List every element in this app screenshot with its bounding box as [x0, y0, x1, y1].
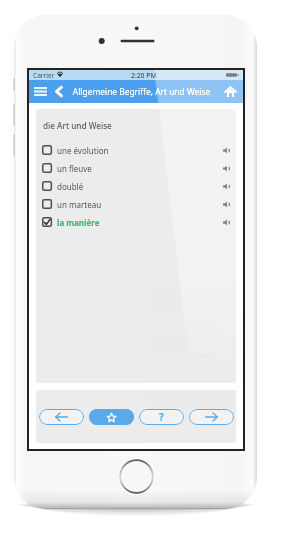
- button[interactable]: Play audio: [220, 214, 233, 230]
- button[interactable]: Play audio: [220, 178, 233, 194]
- button[interactable]: Home: [219, 80, 241, 103]
- staticText: un marteau: [57, 199, 102, 210]
- button[interactable]: la manière: [36, 213, 236, 231]
- button[interactable]: Play audio: [220, 160, 233, 176]
- button[interactable]: Back: [53, 80, 64, 103]
- button[interactable]: Home: [119, 459, 154, 494]
- staticText: ?: [159, 410, 164, 424]
- staticText: une évolution: [57, 145, 109, 156]
- staticText: un fleuve: [57, 163, 92, 174]
- staticText: doublé: [57, 181, 84, 192]
- button[interactable]: Help: [139, 409, 184, 425]
- button[interactable]: Next: [189, 409, 234, 425]
- button[interactable]: Favorite: [89, 409, 134, 425]
- staticText: die Art und Weise: [43, 120, 112, 131]
- staticText: la manière: [57, 217, 100, 228]
- button[interactable]: un fleuve: [36, 159, 236, 177]
- button[interactable]: Play audio: [220, 196, 233, 212]
- staticText: Carrier: [33, 71, 55, 80]
- button[interactable]: doublé: [36, 177, 236, 195]
- button[interactable]: un marteau: [36, 195, 236, 213]
- button[interactable]: Play audio: [220, 142, 233, 158]
- button[interactable]: une évolution: [36, 141, 236, 159]
- staticText: Allgemeine Begriffe, Art und Weise: [66, 86, 217, 97]
- staticText: 2:20 PM: [131, 71, 157, 80]
- button[interactable]: Previous: [39, 409, 84, 425]
- button[interactable]: Menu: [33, 80, 48, 103]
